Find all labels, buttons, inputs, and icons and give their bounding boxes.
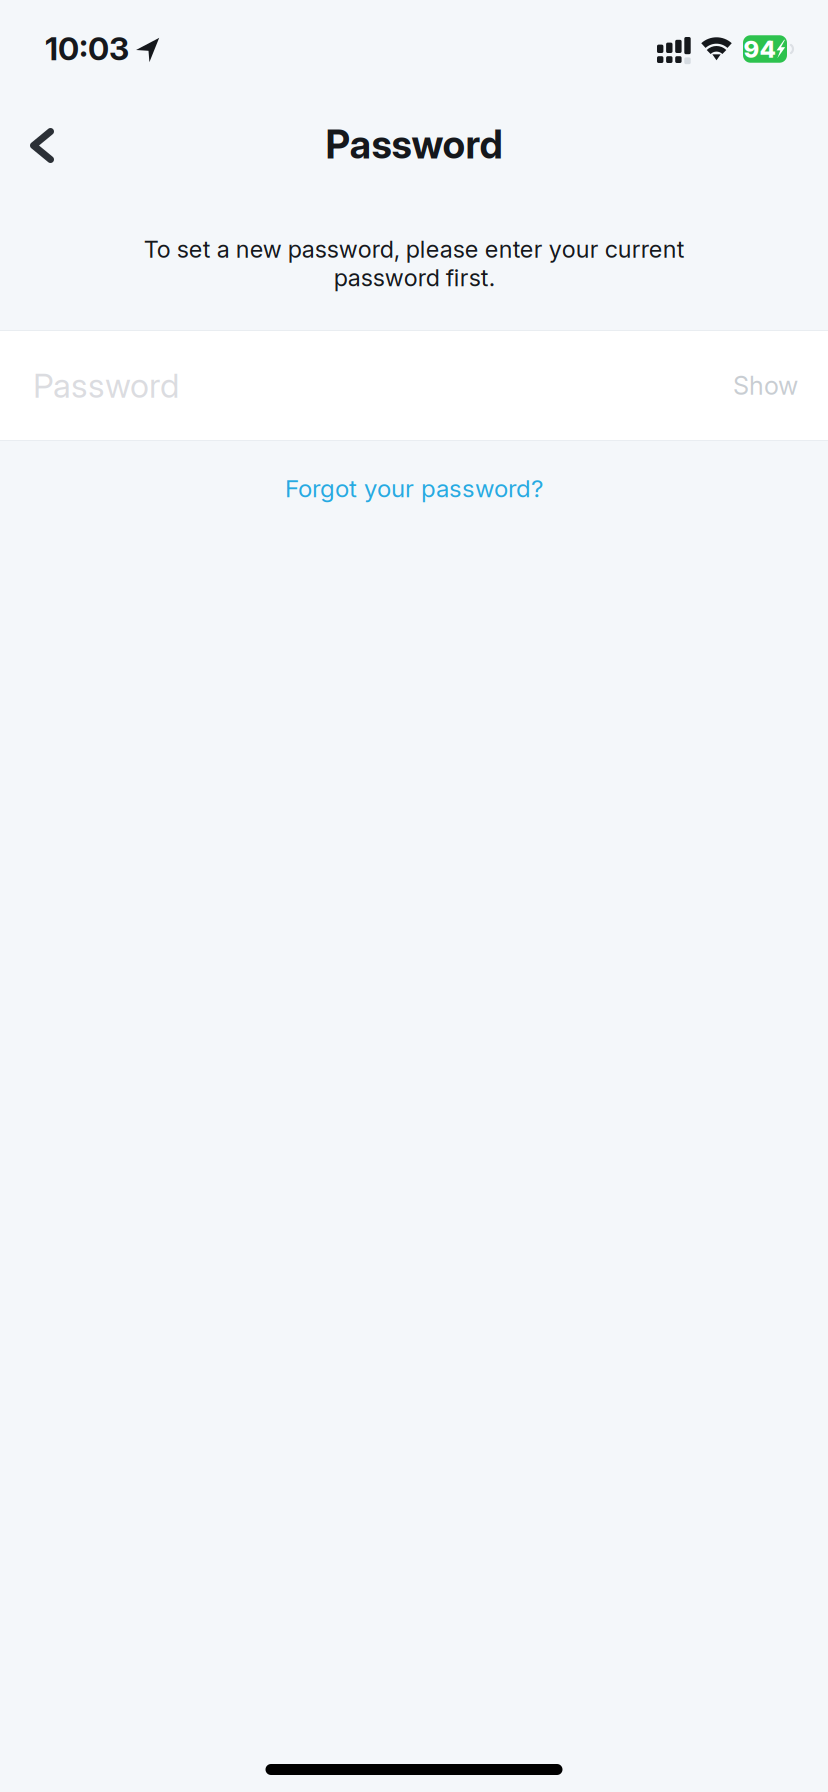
button[interactable]: Password bbox=[0, 330, 828, 441]
staticText: To set a new password, please enter your… bbox=[143, 235, 684, 292]
button[interactable]: Forgot your password? bbox=[254, 458, 574, 518]
staticText: 10:03 bbox=[45, 29, 129, 68]
staticText: Password bbox=[325, 121, 502, 168]
staticText: Password bbox=[33, 365, 179, 406]
button[interactable]: Back bbox=[4, 99, 80, 191]
staticText: 94 bbox=[743, 34, 775, 63]
staticText: Show bbox=[733, 370, 798, 401]
staticText: Forgot your password? bbox=[285, 474, 543, 503]
